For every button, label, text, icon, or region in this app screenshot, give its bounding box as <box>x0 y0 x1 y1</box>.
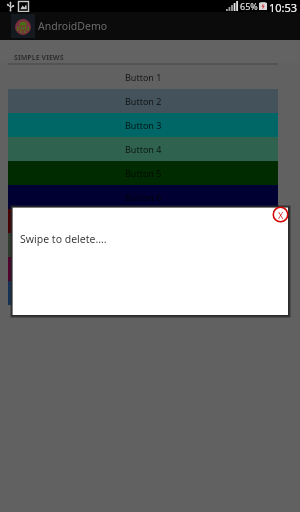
button[interactable]: Button 8 <box>8 233 278 257</box>
button[interactable]: Button 4 <box>8 137 278 161</box>
button[interactable]: Button 6 <box>8 185 278 209</box>
button[interactable]: Button 9 <box>8 257 278 281</box>
staticText: SIMPLE VIEWS <box>14 53 64 63</box>
button[interactable]: Button 1 <box>8 65 278 89</box>
staticText: Button 6 <box>125 191 162 203</box>
button[interactable]: Button 2 <box>8 89 278 113</box>
staticText: Button 4 <box>125 143 162 155</box>
staticText: AndroidDemo <box>38 19 108 33</box>
button[interactable]: Button 10 <box>8 281 278 305</box>
staticText: Button 3 <box>125 119 162 131</box>
staticText: Button 5 <box>125 167 162 179</box>
staticText: Button 2 <box>125 95 162 107</box>
staticText: Button 1 <box>125 71 162 83</box>
button[interactable]: Button 7 <box>8 209 278 233</box>
staticText: 10:53 <box>269 0 298 12</box>
staticText: 65% <box>240 0 258 12</box>
button[interactable]: Close <box>272 206 289 223</box>
staticText: Swipe to delete.... <box>20 232 107 246</box>
staticText: X <box>278 209 284 221</box>
button[interactable]: Button 3 <box>8 113 278 137</box>
